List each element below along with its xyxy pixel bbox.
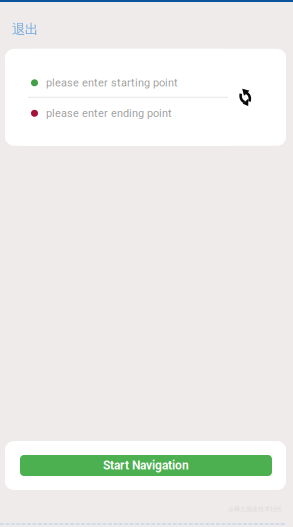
staticText: @稀土掘金技术社区 — [228, 505, 282, 513]
staticText: please enter starting point — [46, 76, 178, 89]
button[interactable]: Start Navigation — [20, 455, 272, 476]
staticText: Start Navigation — [103, 458, 189, 473]
staticText: please enter ending point — [46, 107, 172, 120]
staticText: 退出 — [12, 21, 38, 38]
button[interactable]: Swap start and end point — [229, 49, 286, 146]
button[interactable]: 退出 — [0, 2, 38, 49]
